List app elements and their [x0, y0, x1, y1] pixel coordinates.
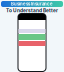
staticText: Business Insurance	[11, 1, 53, 7]
staticText: To Understand Better	[6, 8, 58, 13]
button[interactable]: Business Insurance	[0, 0, 64, 8]
